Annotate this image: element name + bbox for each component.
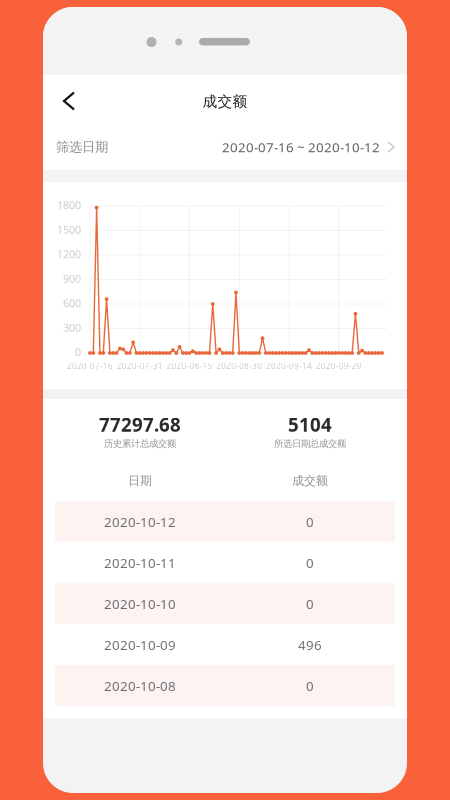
staticText: 2020-10-10 [104, 595, 176, 613]
staticText: 77297.68 [99, 412, 181, 437]
staticText: 1500 [57, 222, 81, 237]
staticText: 600 [63, 296, 81, 310]
staticText: 2020-10-12 [104, 513, 176, 531]
staticText: 900 [63, 271, 81, 286]
staticText: 历史累计总成交额 [104, 438, 176, 449]
staticText: 成交额 [202, 92, 247, 110]
staticText: 0 [306, 677, 314, 695]
staticText: 0 [306, 554, 314, 572]
staticText: 2020-07-16 [67, 361, 113, 371]
staticText: 2020-10-08 [104, 677, 176, 695]
staticText: 5104 [288, 412, 332, 437]
staticText: 2020-09-14 [266, 361, 312, 371]
staticText: 1800 [57, 198, 81, 212]
staticText: 300 [63, 320, 81, 335]
staticText: 0 [306, 513, 314, 531]
staticText: 筛选日期 [56, 139, 108, 155]
button[interactable]: Back [43, 74, 90, 124]
staticText: 所选日期总成交额 [274, 438, 346, 449]
staticText: 2020-09-29 [316, 361, 362, 371]
staticText: 496 [298, 636, 322, 654]
staticText: 0 [75, 345, 81, 359]
staticText: 2020-07-31 [117, 361, 163, 371]
staticText: 2020-07-16 ~ 2020-10-12 [222, 138, 380, 156]
staticText: 2020-10-09 [104, 636, 176, 654]
staticText: 成交额 [292, 473, 328, 488]
staticText: 2020-10-11 [104, 554, 176, 572]
button[interactable]: 筛选日期 [43, 124, 407, 170]
staticText: 日期 [128, 473, 152, 488]
staticText: 2020-08-15 [166, 361, 212, 371]
staticText: 2020-08-30 [216, 361, 262, 371]
staticText: 0 [306, 595, 314, 613]
staticText: 1200 [57, 247, 81, 261]
